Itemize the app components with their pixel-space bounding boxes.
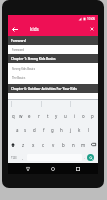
staticText: l <box>88 127 90 133</box>
staticText: w <box>19 113 23 119</box>
button[interactable]: l <box>84 123 93 136</box>
button[interactable]: i <box>70 109 79 122</box>
staticText: o <box>82 113 85 119</box>
staticText: b <box>62 142 65 148</box>
button[interactable]: Recent apps <box>73 164 83 174</box>
staticText: t <box>47 113 49 119</box>
staticText: Foreword <box>12 48 24 52</box>
button[interactable]: g <box>48 123 57 136</box>
button[interactable]: t <box>43 109 52 122</box>
staticText: Strong Kids Basics <box>12 67 35 71</box>
staticText: kids <box>30 26 39 32</box>
staticText: n <box>72 142 75 148</box>
button[interactable]: h <box>57 123 66 136</box>
staticText: u <box>64 113 67 119</box>
button[interactable]: o <box>79 109 88 122</box>
button[interactable]: Strong Kids Basics <box>8 64 98 74</box>
staticText: p <box>91 113 94 119</box>
staticText: k <box>78 127 81 133</box>
staticText: , <box>22 155 23 160</box>
staticText: d <box>33 127 36 133</box>
button[interactable]: u <box>61 109 70 122</box>
button[interactable]: Back <box>23 164 33 174</box>
button[interactable]: j <box>66 123 75 136</box>
button[interactable]: s <box>21 123 30 136</box>
button[interactable]: c <box>38 138 48 151</box>
button[interactable]: a <box>13 123 21 136</box>
button[interactable]: n <box>68 138 78 151</box>
staticText: i <box>74 113 76 119</box>
staticText: Chapter 1: Strong Kids Basics <box>11 57 56 61</box>
button[interactable]: e <box>25 109 34 122</box>
staticText: m <box>81 142 86 148</box>
staticText: z <box>22 142 25 148</box>
button[interactable]: ?123 <box>9 153 19 162</box>
staticText: . <box>84 155 85 160</box>
button[interactable]: w <box>17 109 25 122</box>
staticText: s <box>24 127 27 133</box>
staticText: j <box>70 127 72 133</box>
staticText: Foreword <box>11 39 26 43</box>
button[interactable]: z <box>18 138 28 151</box>
button[interactable]: b <box>58 138 68 151</box>
button[interactable]: m <box>78 138 88 151</box>
staticText: f <box>43 127 45 133</box>
staticText: ?123 <box>11 156 17 160</box>
button[interactable]: q <box>9 109 17 122</box>
button[interactable]: r <box>34 109 43 122</box>
button[interactable]: Backspace <box>88 138 98 151</box>
button[interactable]: Chapter 1: Strong Kids Basics <box>8 54 98 63</box>
button[interactable]: Chapter 6: Outdoor Activities For Your K… <box>8 84 98 93</box>
button[interactable]: Shift <box>8 138 18 151</box>
staticText: r <box>38 113 40 119</box>
button[interactable]: k <box>75 123 84 136</box>
button[interactable]: d <box>30 123 39 136</box>
button[interactable]: y <box>52 109 61 122</box>
button[interactable]: Clear search <box>86 22 98 36</box>
button[interactable]: , <box>19 153 26 162</box>
staticText: a <box>16 127 19 133</box>
staticText: q <box>12 113 15 119</box>
button[interactable]: Home <box>48 164 58 174</box>
staticText: y <box>55 113 58 119</box>
button[interactable]: Navigate up <box>9 22 20 36</box>
button[interactable]: p <box>88 109 97 122</box>
staticText: The Basics <box>12 76 26 80</box>
staticText: v <box>52 142 55 148</box>
button[interactable]: Foreword <box>8 45 98 54</box>
staticText: 10:06 <box>87 17 96 21</box>
staticText: c <box>42 142 45 148</box>
button[interactable]: v <box>48 138 58 151</box>
button[interactable]: Search <box>87 154 94 161</box>
button[interactable]: kids <box>22 22 82 36</box>
staticText: Chapter 6: Outdoor Activities For Your K… <box>11 87 77 91</box>
staticText: g <box>51 127 54 133</box>
staticText: h <box>60 127 63 133</box>
button[interactable]: The Basics <box>8 73 98 83</box>
button[interactable]: f <box>39 123 48 136</box>
staticText: x <box>32 142 35 148</box>
button[interactable]: Foreword <box>8 36 98 45</box>
staticText: e <box>28 113 31 119</box>
button[interactable]: . <box>81 153 87 162</box>
button[interactable]: x <box>28 138 38 151</box>
